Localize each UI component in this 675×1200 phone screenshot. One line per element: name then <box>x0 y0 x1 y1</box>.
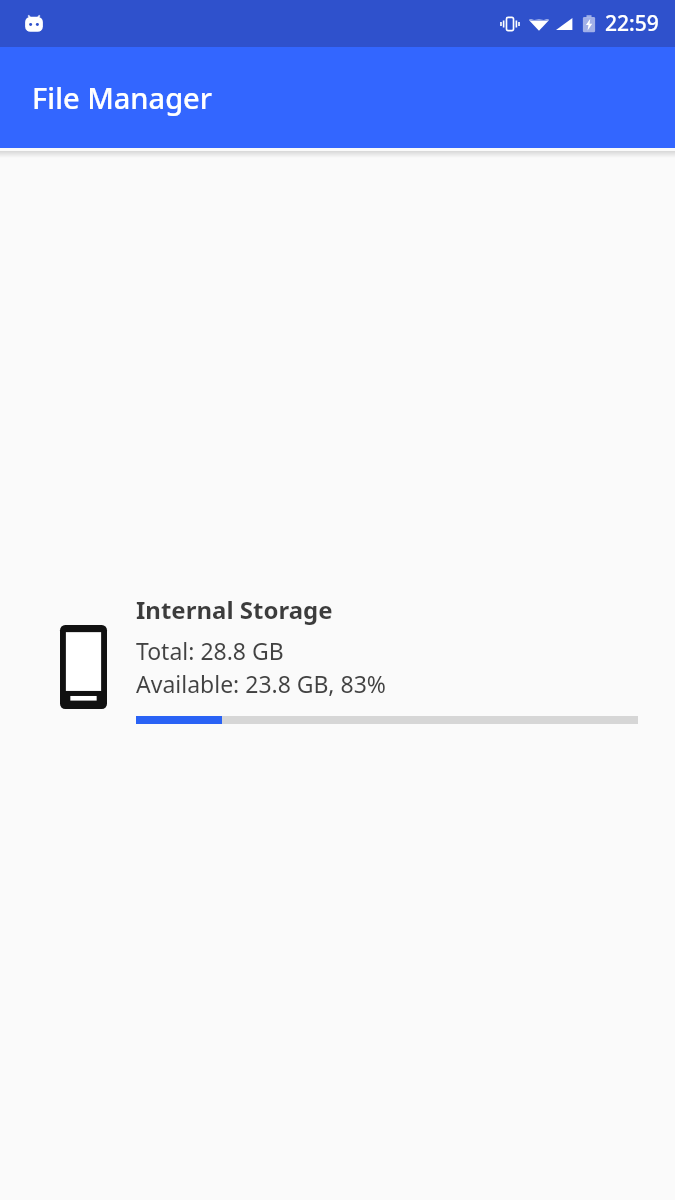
staticText: Available: 23.8 GB, 83% <box>136 668 386 699</box>
staticText: 22:59 <box>605 9 659 38</box>
other: Internal storage <box>60 625 107 709</box>
staticText: Internal Storage <box>136 593 333 626</box>
staticText: File Manager <box>32 78 213 117</box>
staticText: Total: 28.8 GB <box>136 635 284 666</box>
button[interactable]: Internal storage <box>0 593 675 724</box>
